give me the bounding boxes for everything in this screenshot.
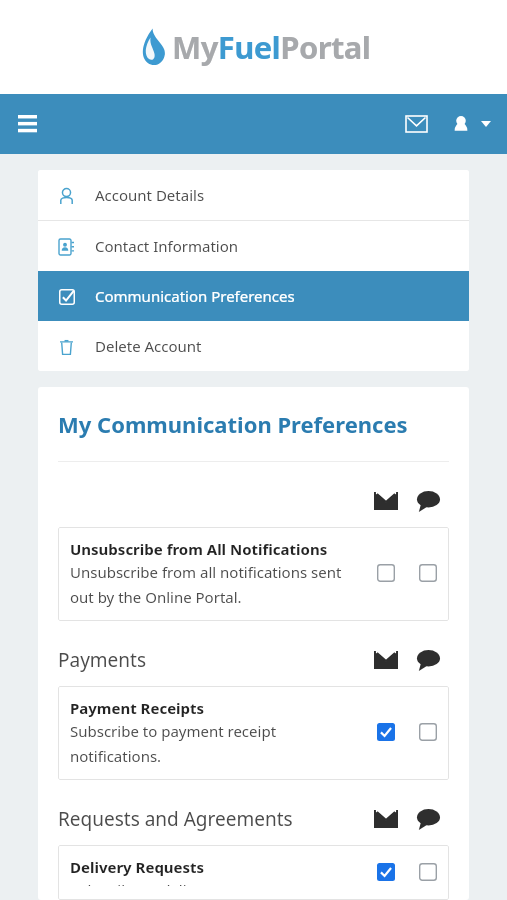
staticText: Delivery Requests xyxy=(70,857,205,877)
button[interactable]: SMS toggle for Delivery Requests xyxy=(407,857,449,886)
button[interactable]: Contact Information xyxy=(38,221,469,271)
staticText: My Communication Preferences xyxy=(58,409,408,439)
staticText: Contact Information xyxy=(95,236,239,256)
button[interactable]: SMS toggle for Unsubscribe from All Noti… xyxy=(407,556,449,590)
button[interactable]: Payment Receipts xyxy=(58,686,449,780)
button[interactable]: Messages xyxy=(397,105,435,143)
button[interactable]: Email toggle for Unsubscribe from All No… xyxy=(365,556,407,590)
button[interactable]: SMS notifications xyxy=(407,804,449,834)
staticText: Payments xyxy=(58,647,147,673)
staticText: Account Details xyxy=(95,185,205,205)
button[interactable]: Email notifications xyxy=(365,486,407,516)
button[interactable]: Email toggle for Delivery Requests xyxy=(365,857,407,886)
staticText: Unsubscribe from All Notifications xyxy=(70,539,328,559)
button[interactable]: Email notifications xyxy=(365,645,407,675)
button[interactable]: Account Details xyxy=(38,170,469,220)
staticText: Payment Receipts xyxy=(70,698,205,718)
button[interactable]: Delete Account xyxy=(38,321,469,371)
button[interactable]: Email toggle for Payment Receipts xyxy=(365,715,407,749)
staticText: MyFuelPortal xyxy=(172,26,371,68)
button[interactable]: Email notifications xyxy=(365,804,407,834)
staticText: Requests and Agreements xyxy=(58,806,293,832)
button[interactable]: Communication Preferences xyxy=(38,271,469,321)
button[interactable]: Delivery Requests xyxy=(58,845,449,900)
button[interactable]: Account menu xyxy=(449,107,495,141)
staticText: Subscribe to delivery request notificati… xyxy=(70,880,359,886)
button[interactable]: SMS toggle for Payment Receipts xyxy=(407,715,449,749)
staticText: Communication Preferences xyxy=(95,286,295,306)
button[interactable]: SMS notifications xyxy=(407,486,449,516)
button[interactable]: Menu xyxy=(10,107,44,141)
staticText: Unsubscribe from all notifications sent … xyxy=(70,562,359,607)
staticText: Subscribe to payment receipt notificatio… xyxy=(70,721,359,766)
staticText: Delete Account xyxy=(95,336,202,356)
button[interactable]: SMS notifications xyxy=(407,645,449,675)
button[interactable]: Unsubscribe from All Notifications xyxy=(58,527,449,621)
